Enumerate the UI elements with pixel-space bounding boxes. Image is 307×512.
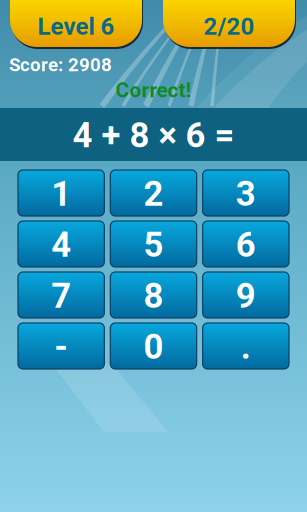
staticText: 0 [143,327,163,367]
button[interactable]: . [203,323,289,369]
staticText: 3 [236,174,256,214]
staticText: Correct! [115,78,191,102]
staticText: 5 [143,225,163,265]
staticText: - [54,327,68,367]
staticText: 7 [51,276,71,316]
button[interactable]: 9 [203,272,289,318]
staticText: 4 + 8 × 6 = [72,115,234,156]
button[interactable]: 2/20 [163,0,295,47]
button[interactable]: 1 [18,170,104,216]
button[interactable]: 4 [18,221,104,267]
staticText: 8 [143,276,163,316]
button[interactable]: - [18,323,104,369]
staticText: 9 [236,276,256,316]
button[interactable]: 2 [110,170,197,216]
staticText: Score: 2908 [9,54,112,76]
button[interactable]: 0 [110,323,197,369]
button[interactable]: 3 [203,170,289,216]
button[interactable]: 5 [110,221,197,267]
staticText: 6 [236,225,256,265]
button[interactable]: Level 6 [10,0,142,47]
button[interactable]: 7 [18,272,104,318]
staticText: Level 6 [37,12,114,40]
button[interactable]: 8 [110,272,197,318]
staticText: . [241,327,251,367]
staticText: 1 [51,174,71,214]
button[interactable]: 6 [203,221,289,267]
staticText: 2 [143,174,163,214]
staticText: 4 [51,225,71,265]
staticText: 2/20 [203,12,254,40]
